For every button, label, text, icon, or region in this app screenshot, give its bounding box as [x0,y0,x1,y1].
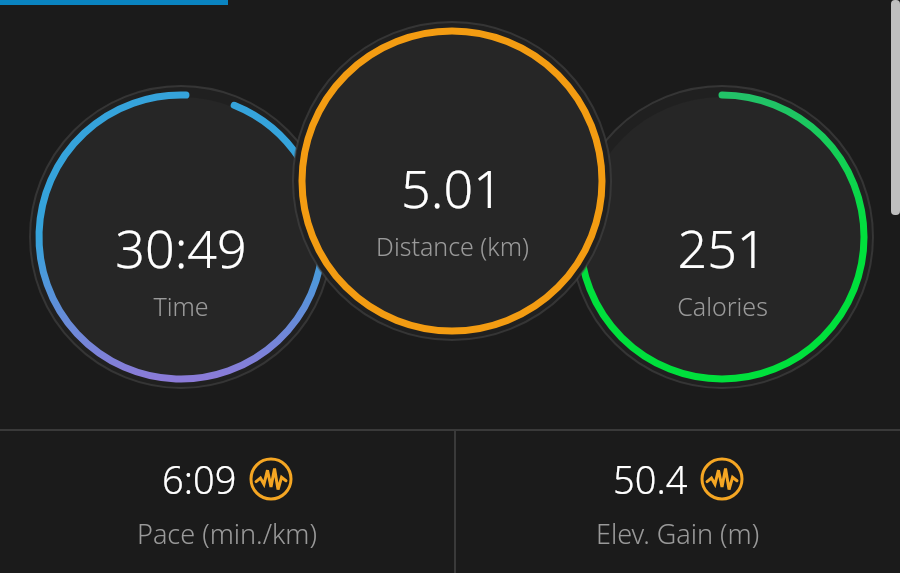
staticText: Pace (min./km) [137,515,317,552]
button[interactable]: Time 30:49 [51,212,311,350]
button[interactable]: Distance 5.01 km [312,152,592,290]
button[interactable]: Pace 6:09 minutes per km [0,431,454,573]
button[interactable]: Elevation gain 50.4 m [456,431,900,573]
staticText: 30:49 [115,212,247,283]
staticText: Distance (km) [376,229,529,263]
staticText: Time [153,289,209,323]
staticText: 5.01 [401,152,503,223]
staticText: Calories [677,289,768,323]
staticText: 6:09 [162,453,237,505]
button[interactable]: Calories 251 [592,212,852,350]
staticText: Elev. Gain (m) [596,515,760,552]
staticText: 251 [677,212,767,283]
staticText: 50.4 [613,453,688,505]
